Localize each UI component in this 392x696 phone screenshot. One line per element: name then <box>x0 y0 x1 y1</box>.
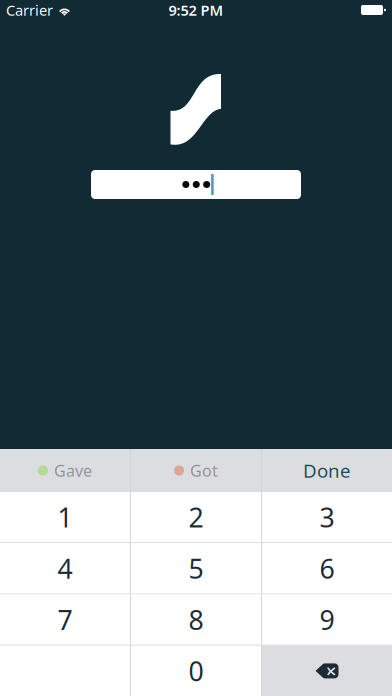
staticText: Got <box>190 460 218 481</box>
button[interactable]: 8 <box>131 594 261 645</box>
staticText: 7 <box>57 602 72 637</box>
staticText: Gave <box>54 460 92 481</box>
staticText: 5 <box>188 551 203 586</box>
button[interactable]: Delete <box>262 646 392 696</box>
staticText: Done <box>303 458 351 483</box>
staticText: 2 <box>188 499 203 535</box>
button[interactable]: Gave <box>0 449 130 492</box>
staticText: 0 <box>188 653 203 689</box>
button[interactable]: 4 <box>0 543 130 593</box>
staticText: 3 <box>319 499 334 535</box>
staticText: 4 <box>57 551 72 586</box>
staticText: 9 <box>319 602 334 637</box>
button[interactable]: 3 <box>262 492 392 542</box>
button[interactable]: 0 <box>131 646 261 696</box>
button[interactable]: 2 <box>131 492 261 542</box>
button[interactable]: 9 <box>262 594 392 645</box>
staticText: 8 <box>188 602 203 637</box>
button[interactable]: 6 <box>262 543 392 593</box>
staticText: 9:52 PM <box>168 0 223 20</box>
button[interactable]: 7 <box>0 594 130 645</box>
button[interactable]: Got <box>131 449 261 492</box>
button[interactable]: 5 <box>131 543 261 593</box>
button[interactable]: 1 <box>0 492 130 542</box>
staticText: 1 <box>57 499 72 535</box>
staticText: Carrier <box>6 0 53 20</box>
button[interactable]: Done <box>262 449 392 492</box>
staticText: 6 <box>319 551 334 586</box>
